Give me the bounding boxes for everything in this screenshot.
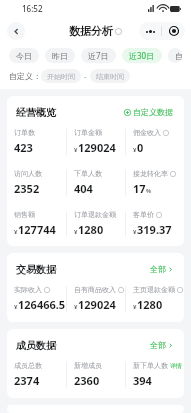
staticText: 昨日 bbox=[52, 51, 68, 61]
staticText: ¥ bbox=[74, 303, 78, 311]
staticText: 404 bbox=[74, 181, 93, 196]
staticText: 订单数 bbox=[14, 128, 35, 137]
button[interactable]: Back bbox=[7, 22, 25, 40]
staticText: 0 bbox=[137, 140, 144, 155]
staticText: 订单金额 bbox=[74, 128, 102, 137]
staticText: 详情 bbox=[170, 362, 182, 370]
staticText: 佣金收入 bbox=[133, 128, 161, 137]
staticText: - bbox=[84, 71, 87, 82]
staticText: 主页退款金额 bbox=[133, 285, 175, 294]
staticText: 销售额 bbox=[14, 210, 35, 219]
staticText: 自定义数据 bbox=[133, 107, 173, 117]
button[interactable]: 全部 bbox=[148, 338, 175, 352]
staticText: 新下单人数 bbox=[133, 361, 168, 370]
staticText: 下单人数 bbox=[74, 169, 102, 178]
staticText: 交易数据 bbox=[16, 263, 56, 276]
staticText: 近30日 bbox=[129, 50, 155, 61]
button[interactable]: 自定义数据 bbox=[122, 105, 175, 119]
staticText: 全部 bbox=[150, 264, 166, 274]
staticText: 1280 bbox=[137, 297, 163, 312]
button[interactable]: 近7日 bbox=[81, 48, 116, 63]
staticText: ¥ bbox=[133, 146, 137, 154]
staticText: ¥ bbox=[14, 228, 18, 236]
button[interactable]: 结束时间 bbox=[90, 69, 130, 83]
staticText: 成员数据 bbox=[16, 339, 56, 352]
staticText: 成员总数 bbox=[14, 361, 42, 370]
staticText: % bbox=[146, 187, 152, 195]
staticText: 129024 bbox=[78, 297, 116, 312]
staticText: 126466.56 bbox=[18, 297, 66, 312]
staticText: 今日 bbox=[16, 51, 32, 61]
button[interactable]: 今日 bbox=[9, 48, 39, 63]
staticText: 结束时间 bbox=[96, 72, 124, 81]
staticText: 数据分析 bbox=[69, 24, 113, 38]
staticText: 自有商品收入 bbox=[74, 285, 116, 294]
staticText: 127744 bbox=[18, 222, 56, 237]
staticText: 319.37 bbox=[137, 222, 172, 237]
staticText: 访问人数 bbox=[14, 169, 42, 178]
staticText: 394 bbox=[133, 373, 152, 388]
staticText: 全部 bbox=[150, 340, 166, 350]
staticText: ¥ bbox=[74, 228, 78, 236]
staticText: ¥ bbox=[14, 303, 18, 311]
button[interactable]: Target bbox=[162, 22, 185, 40]
staticText: 423 bbox=[14, 140, 33, 155]
staticText: 129024 bbox=[78, 140, 116, 155]
staticText: 新增成员 bbox=[74, 361, 102, 370]
staticText: 2352 bbox=[14, 181, 40, 196]
staticText: 开始时间 bbox=[47, 72, 75, 81]
staticText: 16:52 bbox=[22, 3, 43, 14]
button[interactable]: 近30日 bbox=[122, 48, 162, 63]
staticText: 实际收入 bbox=[14, 285, 42, 294]
staticText: ¥ bbox=[133, 303, 137, 311]
button[interactable]: 昨日 bbox=[45, 48, 75, 63]
staticText: ¥ bbox=[74, 146, 78, 154]
staticText: 17 bbox=[133, 181, 146, 196]
button[interactable]: 自然月 bbox=[168, 48, 182, 63]
staticText: 自定义： bbox=[9, 71, 41, 81]
staticText: 1280 bbox=[78, 222, 104, 237]
button[interactable]: 全部 bbox=[148, 262, 175, 276]
staticText: 2374 bbox=[14, 373, 40, 388]
staticText: 近7日 bbox=[88, 50, 109, 61]
staticText: 接龙转化率 bbox=[133, 169, 168, 178]
staticText: 客单价 bbox=[133, 210, 154, 219]
button[interactable]: 开始时间 bbox=[41, 69, 81, 83]
button[interactable]: More options bbox=[139, 22, 161, 40]
staticText: 2360 bbox=[74, 373, 100, 388]
staticText: ¥ bbox=[133, 228, 137, 236]
staticText: 经营概览 bbox=[16, 106, 56, 119]
staticText: 订单退款金额 bbox=[74, 210, 116, 219]
